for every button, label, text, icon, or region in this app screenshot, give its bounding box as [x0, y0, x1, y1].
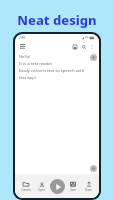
staticText: Save — [70, 188, 76, 192]
button[interactable]: Play — [50, 179, 65, 194]
button[interactable]: Save — [65, 180, 80, 193]
staticText: this app! — [19, 75, 36, 81]
staticText: Neat design — [17, 11, 97, 29]
staticText: 7:50 — [19, 36, 26, 40]
button[interactable]: Search — [79, 42, 88, 51]
staticText: It is a text reader. — [19, 61, 53, 67]
staticText: Share — [85, 188, 92, 192]
button[interactable]: Add — [90, 165, 97, 172]
staticText: Camera — [21, 188, 31, 192]
button[interactable]: More options — [88, 43, 96, 51]
button[interactable]: Menu — [18, 42, 27, 51]
button[interactable]: Share — [81, 180, 96, 193]
button[interactable]: Open — [34, 180, 49, 193]
staticText: Open — [38, 188, 45, 192]
staticText: Hello! — [19, 54, 31, 60]
button[interactable]: Save — [70, 42, 79, 51]
staticText: Easily convert text to speech with — [19, 68, 85, 74]
button[interactable]: Camera — [18, 180, 33, 193]
button[interactable]: Settings — [90, 54, 97, 61]
